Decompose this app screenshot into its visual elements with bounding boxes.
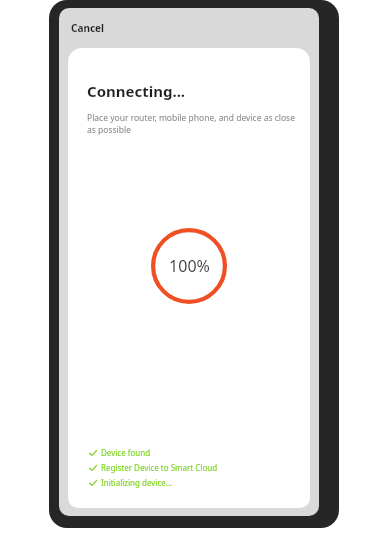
- staticText: 100%: [169, 255, 210, 277]
- other: Completed: [89, 449, 97, 457]
- staticText: Cancel: [71, 21, 105, 35]
- staticText: Register Device to Smart Cloud: [101, 462, 218, 473]
- staticText: Initializing device...: [101, 477, 173, 488]
- other: Completed: [89, 464, 97, 472]
- staticText: Device found: [101, 447, 151, 458]
- other: Completed: [89, 479, 97, 487]
- staticText: Connecting...: [87, 81, 186, 101]
- staticText: Place your router, mobile phone, and dev…: [87, 112, 296, 136]
- button[interactable]: Cancel: [59, 8, 129, 48]
